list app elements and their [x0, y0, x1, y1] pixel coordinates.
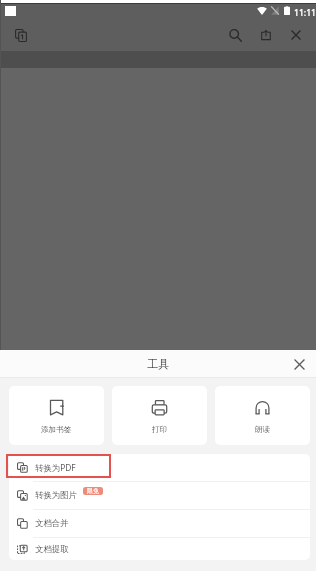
button[interactable]: 朗读	[215, 386, 310, 445]
button[interactable]: 添加书签	[9, 386, 104, 445]
button[interactable]: 打印	[112, 386, 207, 445]
staticText: 限免	[87, 487, 99, 495]
button[interactable]: Search	[222, 22, 248, 48]
button[interactable]: 文档提取	[9, 538, 310, 560]
staticText: 文档合并	[35, 518, 69, 529]
button[interactable]: Share	[253, 22, 279, 48]
button[interactable]: Tabs	[8, 22, 34, 48]
staticText: 工具	[147, 357, 169, 371]
button[interactable]: 文档合并	[9, 510, 310, 537]
staticText: 打印	[152, 425, 168, 435]
staticText: 转换为图片	[35, 490, 77, 501]
staticText: 转换为PDF	[35, 462, 76, 473]
button[interactable]: 转换为图片	[9, 482, 310, 509]
button[interactable]: Close	[283, 22, 309, 48]
staticText: 朗读	[255, 425, 271, 435]
staticText: 文档提取	[35, 544, 69, 555]
staticText: 11:11	[294, 7, 316, 19]
button[interactable]: Close tools	[288, 353, 310, 375]
staticText: 添加书签	[41, 425, 72, 435]
button[interactable]: 转换为PDF	[9, 454, 310, 481]
